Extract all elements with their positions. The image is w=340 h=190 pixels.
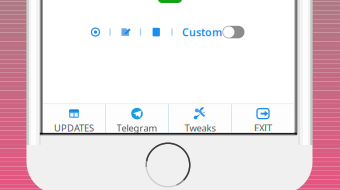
- staticText: EXIT: [254, 122, 272, 134]
- staticText: Custom: [182, 25, 222, 39]
- button[interactable]: Telegram: [106, 104, 168, 133]
- button[interactable]: Stop: [150, 27, 162, 37]
- button[interactable]: EXIT: [232, 104, 294, 133]
- button[interactable]: Custom: [182, 25, 244, 39]
- staticText: Telegram: [116, 122, 157, 134]
- button[interactable]: Tweaks: [169, 104, 231, 133]
- button[interactable]: Record: [91, 28, 100, 37]
- staticText: Tweaks: [184, 122, 215, 134]
- button[interactable]: UPDATES: [43, 104, 105, 133]
- button[interactable]: Compose: [120, 27, 130, 37]
- staticText: UPDATES: [54, 122, 94, 134]
